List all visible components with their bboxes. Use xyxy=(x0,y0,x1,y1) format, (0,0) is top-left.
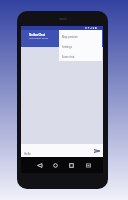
button[interactable]: Erase chat xyxy=(59,52,102,61)
button[interactable]: Back xyxy=(32,158,46,172)
staticText: User status: 564 m xyxy=(29,37,49,40)
button[interactable]: Recent apps xyxy=(64,158,78,172)
staticText: Erase chat xyxy=(62,55,75,59)
button[interactable]: Screenshot xyxy=(81,158,95,172)
button[interactable]: Send xyxy=(90,144,103,157)
button[interactable]: Map position xyxy=(59,32,102,42)
button[interactable]: Settings xyxy=(59,42,102,52)
button[interactable]: NeiborChat xyxy=(21,30,103,47)
staticText: Hello xyxy=(24,152,90,156)
button[interactable]: Home xyxy=(48,158,62,172)
staticText: Settings xyxy=(62,45,72,49)
staticText: Map position xyxy=(62,35,78,39)
staticText: NeiborChat xyxy=(29,33,46,37)
